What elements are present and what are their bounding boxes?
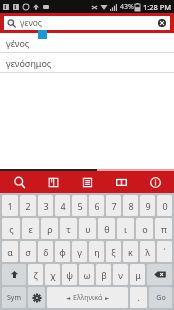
staticText: μ — [135, 269, 141, 281]
button[interactable]: Go — [149, 287, 172, 308]
staticText: υ — [85, 223, 91, 235]
staticText: δ — [43, 246, 49, 258]
staticText: ω — [83, 269, 91, 281]
button[interactable]: γενόσημος — [0, 53, 174, 73]
button[interactable]: φ — [55, 241, 70, 262]
staticText: χ — [50, 269, 56, 281]
button[interactable]: ι — [117, 218, 134, 239]
button[interactable]: γένος — [0, 33, 174, 53]
button[interactable]: δ — [38, 241, 53, 262]
staticText: 4 — [60, 200, 66, 212]
staticText: α — [7, 246, 13, 258]
button[interactable]: . — [130, 287, 147, 308]
staticText: γένος — [6, 37, 30, 49]
button[interactable]: Space, Ελληνικά — [47, 287, 128, 308]
staticText: 7 — [111, 200, 117, 212]
button[interactable]: η — [89, 241, 104, 262]
button[interactable]: β — [96, 264, 111, 285]
staticText: η — [94, 246, 100, 258]
button[interactable]: λ — [140, 241, 155, 262]
staticText: γενος — [20, 17, 156, 29]
button[interactable]: Search — [4, 16, 170, 30]
button[interactable]: Clear query — [156, 17, 168, 29]
button[interactable]: Sym — [2, 287, 26, 308]
staticText: θ — [104, 223, 110, 235]
staticText: 1:28 PM — [143, 2, 172, 12]
staticText: 6 — [94, 200, 100, 212]
button[interactable]: ΄ — [157, 241, 172, 262]
button[interactable]: 8 — [123, 195, 138, 216]
button[interactable]: 0 — [157, 195, 172, 216]
staticText: π — [161, 223, 167, 235]
button[interactable]: α — [2, 241, 18, 262]
staticText: 43% — [120, 2, 134, 12]
staticText: φ — [59, 246, 66, 258]
staticText: ε — [28, 223, 33, 235]
button[interactable]: ς — [2, 218, 20, 239]
button[interactable]: ξ — [106, 241, 121, 262]
button[interactable]: 3 — [38, 195, 53, 216]
button[interactable]: ε — [22, 218, 39, 239]
staticText: κ — [128, 246, 133, 258]
staticText: 0 — [162, 200, 168, 212]
button[interactable]: κ — [123, 241, 138, 262]
button[interactable]: 2 — [20, 195, 36, 216]
button[interactable]: Backspace — [147, 264, 172, 285]
staticText: ς — [9, 223, 14, 235]
button[interactable]: Keyboard settings — [28, 287, 45, 308]
staticText: ◄ — [66, 295, 71, 301]
button[interactable]: ν — [113, 264, 128, 285]
button[interactable]: ζ — [28, 264, 43, 285]
button[interactable]: 9 — [140, 195, 155, 216]
staticText: 1 — [7, 200, 13, 212]
button[interactable]: 4 — [55, 195, 70, 216]
staticText: 9 — [145, 200, 151, 212]
button[interactable]: χ — [45, 264, 60, 285]
button[interactable]: σ — [20, 241, 36, 262]
button[interactable]: ψ — [62, 264, 77, 285]
button[interactable]: γ — [72, 241, 87, 262]
button[interactable]: Info — [140, 171, 170, 193]
staticText: 2 — [25, 200, 31, 212]
other: Search — [7, 19, 16, 28]
button[interactable]: μ — [130, 264, 145, 285]
staticText: ψ — [66, 269, 73, 281]
staticText: . — [137, 292, 140, 303]
staticText: ι — [124, 223, 127, 235]
button[interactable]: Shift — [2, 264, 26, 285]
button[interactable]: Word list — [72, 171, 102, 193]
staticText: σ — [25, 246, 31, 258]
button[interactable]: τ — [60, 218, 77, 239]
button[interactable]: 1 — [2, 195, 18, 216]
button[interactable]: 5 — [72, 195, 87, 216]
staticText: Sym — [7, 293, 21, 303]
staticText: β — [101, 269, 107, 281]
staticText: 3 — [43, 200, 49, 212]
staticText: 5 — [77, 200, 83, 212]
staticText: Go — [156, 293, 166, 303]
staticText: ξ — [111, 246, 116, 258]
staticText: Ελληνικά — [73, 293, 103, 303]
staticText: ν — [118, 269, 123, 281]
button[interactable]: Search — [4, 171, 34, 193]
staticText: ► — [105, 295, 110, 301]
button[interactable]: 6 — [89, 195, 104, 216]
button[interactable]: ρ — [41, 218, 58, 239]
staticText: ζ — [33, 269, 38, 281]
staticText: τ — [66, 223, 71, 235]
staticText: 8 — [128, 200, 134, 212]
staticText: λ — [145, 246, 150, 258]
staticText: γ — [77, 246, 82, 258]
button[interactable]: Read book — [106, 171, 136, 193]
staticText: ρ — [47, 223, 53, 235]
button[interactable]: θ — [98, 218, 115, 239]
staticText: γενόσημος — [6, 57, 52, 69]
button[interactable]: ω — [79, 264, 94, 285]
button[interactable]: υ — [79, 218, 96, 239]
staticText: ο — [142, 223, 148, 235]
button[interactable]: 7 — [106, 195, 121, 216]
staticText: ΄ — [163, 246, 166, 258]
button[interactable]: Dictionaries — [38, 171, 68, 193]
button[interactable]: ο — [136, 218, 153, 239]
button[interactable]: π — [155, 218, 172, 239]
